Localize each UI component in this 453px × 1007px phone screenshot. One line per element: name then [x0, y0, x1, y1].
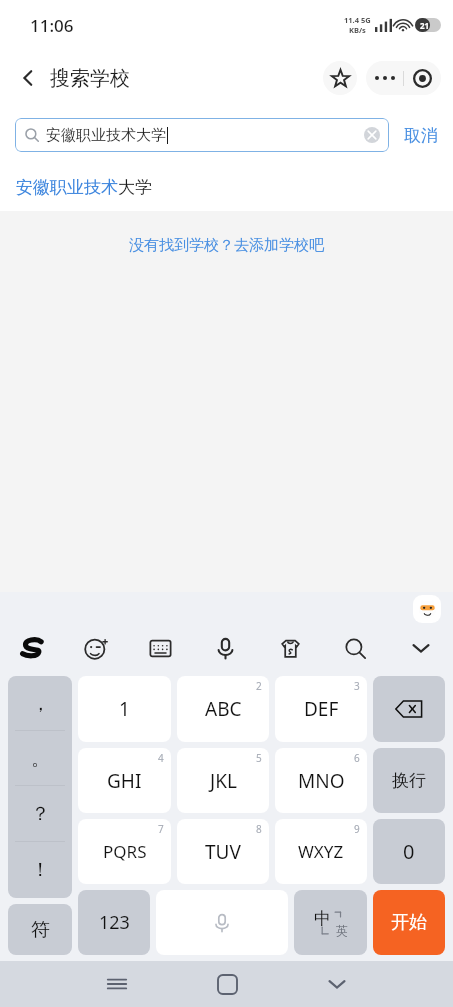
button[interactable]: 换行 — [373, 748, 445, 813]
button[interactable]: 取消 — [389, 113, 453, 157]
staticText: 9 — [354, 822, 360, 836]
button[interactable]: Assistant — [413, 595, 441, 623]
staticText: KB/s — [349, 25, 366, 35]
button[interactable]: Themes — [258, 626, 323, 670]
staticText: 取消 — [404, 125, 438, 146]
staticText: 换行 — [392, 770, 426, 791]
button[interactable]: 。 — [8, 731, 72, 786]
staticText: 21 — [420, 20, 430, 31]
button[interactable]: DEF — [275, 676, 367, 742]
staticText: 4 — [158, 751, 164, 765]
staticText: JKL — [210, 768, 237, 794]
button[interactable]: 开始 — [373, 890, 445, 955]
button[interactable]: Clear text — [357, 120, 387, 150]
staticText: 6 — [354, 751, 360, 765]
staticText: TUV — [205, 839, 241, 865]
staticText: GHI — [107, 768, 142, 794]
button[interactable]: ， — [8, 676, 72, 731]
button[interactable]: Recent apps — [62, 961, 172, 1007]
button[interactable]: GHI — [78, 748, 171, 813]
button[interactable]: Space — [156, 890, 288, 955]
other: Back — [14, 64, 42, 92]
button[interactable]: More options — [366, 61, 403, 95]
staticText: 开始 — [391, 911, 427, 934]
button[interactable]: Sogou input — [0, 626, 64, 670]
button[interactable]: Search — [323, 626, 388, 670]
staticText: 2 — [256, 679, 262, 693]
staticText: 11:06 — [30, 14, 74, 37]
button[interactable]: Chinese English toggle — [294, 890, 367, 955]
staticText: 123 — [99, 910, 130, 935]
button[interactable]: Keyboard layout — [128, 626, 193, 670]
staticText: 5 — [256, 751, 262, 765]
button[interactable]: 0 — [373, 819, 445, 884]
staticText: WXYZ — [298, 840, 344, 863]
staticText: 搜索学校 — [50, 66, 130, 91]
button[interactable]: ABC — [177, 676, 269, 742]
staticText: ？ — [31, 802, 50, 826]
button[interactable]: 安徽职业技术大学 — [15, 118, 389, 152]
staticText: 中 — [314, 908, 331, 929]
button[interactable]: Voice input — [193, 626, 258, 670]
button[interactable]: 123 — [78, 890, 150, 955]
button[interactable]: Emoji — [64, 626, 128, 670]
staticText: 7 — [158, 822, 164, 836]
staticText: 安徽职业技术大学 — [16, 177, 152, 198]
button[interactable]: Home — [172, 961, 282, 1007]
staticText: 8 — [256, 822, 262, 836]
button[interactable]: Backspace — [373, 676, 445, 742]
staticText: 11.4 5G — [344, 15, 371, 25]
staticText: 。 — [31, 747, 50, 771]
staticText: 安徽职业技术大学 — [46, 126, 166, 145]
staticText: DEF — [304, 696, 339, 722]
button[interactable]: MNO — [275, 748, 367, 813]
staticText: ！ — [31, 858, 50, 882]
button[interactable]: 符 — [8, 904, 72, 955]
button[interactable]: Back — [0, 50, 136, 106]
button[interactable]: Back — [282, 961, 392, 1007]
staticText: 3 — [354, 679, 360, 693]
button[interactable]: Close — [404, 61, 441, 95]
button[interactable]: Favorite — [323, 61, 357, 95]
staticText: ABC — [205, 696, 242, 722]
button[interactable]: JKL — [177, 748, 269, 813]
staticText: 1 — [119, 696, 130, 722]
button[interactable]: TUV — [177, 819, 269, 884]
button[interactable]: 1 — [78, 676, 171, 742]
staticText: 0 — [403, 838, 415, 865]
staticText: MNO — [298, 768, 345, 794]
staticText: 没有找到学校？去添加学校吧 — [129, 236, 324, 255]
button[interactable]: ！ — [8, 842, 72, 898]
button[interactable]: 没有找到学校？去添加学校吧 — [123, 233, 330, 258]
staticText: 英 — [336, 923, 348, 938]
button[interactable]: WXYZ — [275, 819, 367, 884]
button[interactable]: ？ — [8, 786, 72, 842]
staticText: PQRS — [103, 840, 147, 863]
staticText: ， — [31, 692, 50, 716]
staticText: 符 — [31, 918, 50, 942]
button[interactable]: 安徽职业技术大学 — [0, 164, 453, 211]
button[interactable]: PQRS — [78, 819, 171, 884]
button[interactable]: Hide keyboard — [388, 626, 453, 670]
